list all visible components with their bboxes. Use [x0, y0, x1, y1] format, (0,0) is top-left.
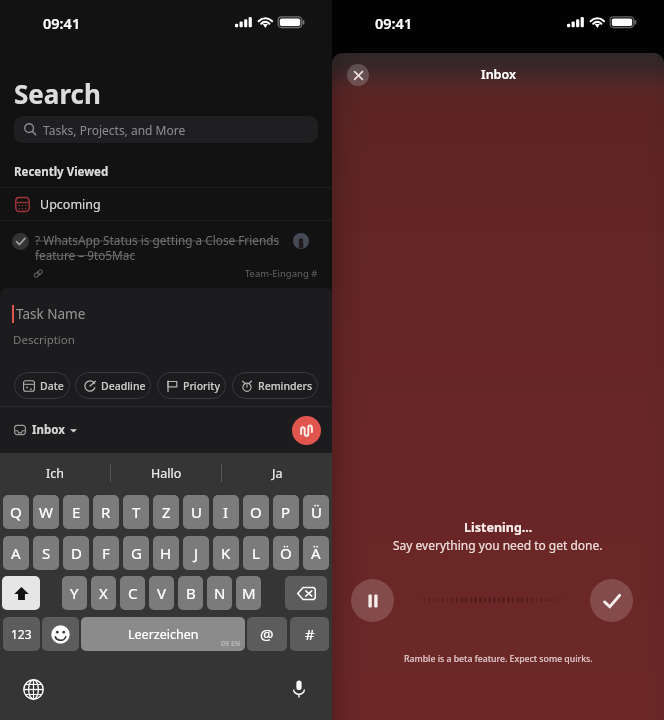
button[interactable]: R [93, 495, 119, 529]
button[interactable]: Record voice task [292, 416, 321, 445]
staticText: Recently Viewed [14, 164, 109, 180]
staticText: Description [13, 332, 75, 348]
staticText: I [223, 502, 229, 522]
button[interactable]: Reminders [232, 372, 318, 399]
button[interactable]: Done [590, 579, 633, 622]
button[interactable]: V [149, 576, 174, 610]
button[interactable]: A [3, 536, 29, 570]
button[interactable]: Close [347, 64, 369, 86]
staticText: Ö [280, 543, 292, 563]
staticText: Y [70, 583, 79, 603]
staticText: Ä [311, 543, 321, 563]
button[interactable]: Ü [303, 495, 329, 529]
staticText: O [250, 502, 262, 522]
staticText: 09:41 [375, 13, 413, 33]
staticText: L [252, 543, 260, 563]
staticText: V [157, 583, 167, 603]
button[interactable]: C [120, 576, 145, 610]
button[interactable]: X [91, 576, 116, 610]
button[interactable]: Ja [222, 453, 332, 493]
button[interactable]: F [93, 536, 119, 570]
staticText: ? WhatsApp Status is getting a Close Fri… [35, 232, 291, 263]
staticText: Upcoming [40, 196, 101, 213]
staticText: P [281, 502, 291, 522]
staticText: Search [14, 76, 101, 111]
staticText: Inbox [32, 422, 65, 438]
button[interactable]: Priority [157, 372, 226, 399]
button[interactable]: Deadline [75, 372, 151, 399]
staticText: # [305, 624, 315, 644]
staticText: @ [260, 624, 274, 644]
staticText: Q [10, 502, 22, 522]
button[interactable]: Tasks, Projects, and More [14, 116, 318, 143]
staticText: Tasks, Projects, and More [43, 122, 186, 138]
staticText: R [101, 502, 111, 522]
button[interactable]: Leerzeichen [81, 617, 245, 651]
button[interactable]: O [243, 495, 269, 529]
staticText: Deadline [101, 379, 146, 393]
button[interactable]: Shift [2, 576, 40, 610]
button[interactable]: K [213, 536, 239, 570]
staticText: Task Name [16, 305, 86, 323]
button[interactable]: U [183, 495, 209, 529]
staticText: M [242, 583, 256, 603]
staticText: Z [162, 502, 171, 522]
button[interactable]: Ö [273, 536, 299, 570]
staticText: Date [40, 379, 64, 393]
staticText: Ü [311, 502, 322, 522]
button[interactable]: H [153, 536, 179, 570]
button[interactable]: D [63, 536, 89, 570]
button[interactable]: # [290, 617, 329, 651]
button[interactable]: I [213, 495, 239, 529]
button[interactable]: Inbox [0, 422, 83, 438]
staticText: H [160, 543, 172, 563]
button[interactable]: Q [3, 495, 29, 529]
staticText: Listening... [464, 519, 533, 536]
staticText: Priority [183, 379, 220, 393]
staticText: K [221, 543, 231, 563]
button[interactable]: E [63, 495, 89, 529]
button[interactable]: B [178, 576, 203, 610]
staticText: W [39, 502, 53, 522]
button[interactable]: J [183, 536, 209, 570]
staticText: Say everything you need to get done. [393, 537, 603, 553]
staticText: F [102, 543, 110, 563]
button[interactable]: M [236, 576, 261, 610]
button[interactable]: Pause [351, 579, 394, 622]
button[interactable]: W [33, 495, 59, 529]
button[interactable]: Y [62, 576, 87, 610]
button[interactable]: P [273, 495, 299, 529]
button[interactable]: Backspace [285, 576, 327, 610]
button[interactable]: T [123, 495, 149, 529]
button[interactable]: S [33, 536, 59, 570]
staticText: X [99, 583, 108, 603]
button[interactable]: N [207, 576, 232, 610]
button[interactable]: Upcoming [0, 188, 332, 220]
staticText: Team-Eingang # [245, 267, 318, 280]
button[interactable]: @ [247, 617, 287, 651]
staticText: G [131, 543, 142, 563]
button[interactable]: Ä [303, 536, 329, 570]
staticText: B [186, 583, 196, 603]
button[interactable]: Hallo [111, 453, 221, 493]
button[interactable]: Change keyboard language [19, 675, 47, 703]
button[interactable]: Ich [0, 453, 110, 493]
button[interactable]: L [243, 536, 269, 570]
staticText: S [42, 543, 51, 563]
staticText: DE EN [221, 639, 241, 648]
button[interactable]: Date [14, 372, 70, 399]
staticText: E [72, 502, 81, 522]
button[interactable]: ? WhatsApp Status is getting a Close Fri… [0, 221, 332, 288]
staticText: Ja [272, 465, 283, 482]
staticText: U [191, 502, 202, 522]
button[interactable]: Emoji [42, 617, 79, 651]
button[interactable]: Z [153, 495, 179, 529]
staticText: D [71, 543, 82, 563]
button[interactable]: Voice input [285, 675, 313, 703]
staticText: Ramble is a beta feature. Expect some qu… [404, 653, 593, 665]
staticText: 123 [11, 626, 32, 642]
staticText: Hallo [151, 465, 182, 482]
button[interactable]: 123 [3, 617, 40, 651]
button[interactable]: G [123, 536, 149, 570]
staticText: T [132, 502, 141, 522]
